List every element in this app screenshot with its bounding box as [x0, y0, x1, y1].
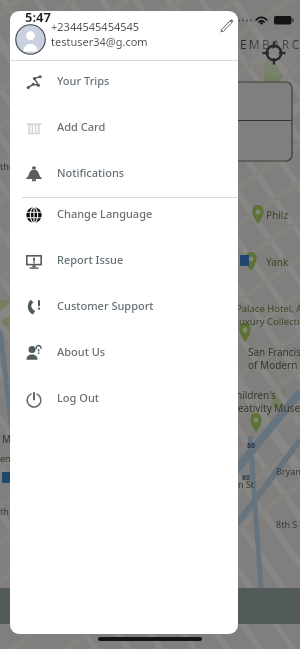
staticText: Report Issue — [57, 252, 124, 267]
button[interactable]: Add Card — [10, 103, 238, 149]
staticText: Your Trips — [57, 73, 110, 88]
staticText: n St — [238, 478, 255, 490]
staticText: reativity Museu — [234, 401, 300, 415]
staticText: ent — [0, 452, 14, 464]
staticText: 8th S — [276, 518, 298, 530]
staticText: of Modern A — [248, 358, 300, 372]
button[interactable]: Log Out — [10, 374, 238, 420]
staticText: Bryan — [276, 465, 300, 477]
button[interactable]: Change Language — [10, 190, 238, 236]
staticText: th St — [0, 505, 20, 517]
staticText: 80 — [242, 473, 251, 483]
staticText: EMBARC — [240, 36, 300, 52]
staticText: Luxury Collectio — [234, 315, 300, 328]
button[interactable]: Customer Support — [10, 282, 238, 328]
staticText: +2344545454545 — [51, 19, 140, 34]
staticText: 5:47 — [25, 8, 51, 26]
staticText: Customer Support — [57, 298, 154, 313]
button[interactable]: Your Trips — [10, 57, 238, 103]
staticText: San Francisc — [248, 345, 300, 359]
staticText: Add Card — [57, 119, 106, 134]
staticText: testuser34@g.com — [51, 34, 148, 49]
button[interactable]: Edit profile — [216, 14, 238, 36]
staticText: Philz — [266, 208, 289, 222]
staticText: Change Language — [57, 206, 153, 221]
button[interactable]: Report Issue — [10, 236, 238, 282]
staticText: Log Out — [57, 390, 100, 405]
staticText: M — [2, 432, 12, 446]
button[interactable]: Notifications — [10, 149, 238, 195]
staticText: hildren's — [236, 388, 276, 402]
staticText: 80 — [247, 441, 256, 451]
staticText: the — [0, 160, 14, 172]
button[interactable]: About Us — [10, 328, 238, 374]
staticText: About Us — [57, 344, 106, 359]
staticText: Palace Hotel, A — [236, 302, 300, 315]
staticText: Yank — [266, 255, 289, 269]
staticText: Notifications — [57, 165, 125, 180]
